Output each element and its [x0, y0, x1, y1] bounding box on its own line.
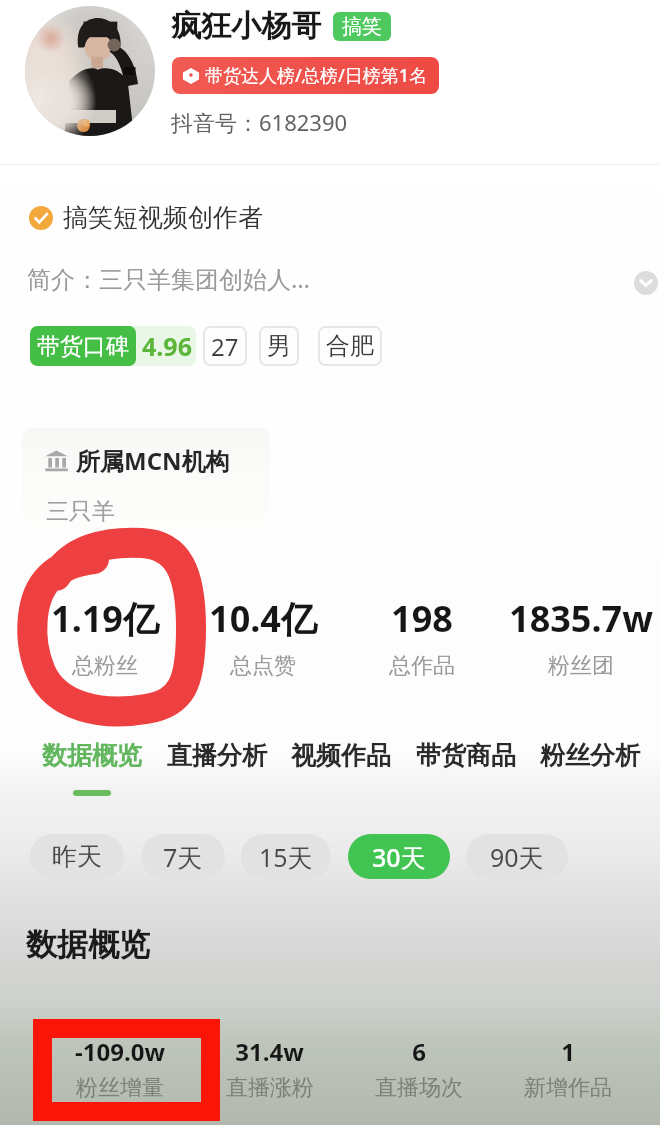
button[interactable]: 视频作品 — [291, 740, 391, 796]
staticText: 198 — [391, 594, 453, 643]
button[interactable]: 15天 — [259, 834, 313, 879]
staticText: 10.4亿 — [209, 594, 317, 643]
staticText: 简介：三只羊集团创始人… — [27, 262, 310, 295]
staticText: 6 — [412, 1035, 426, 1068]
button[interactable]: 所属MCN机构 — [22, 428, 270, 530]
staticText: 粉丝团 — [548, 652, 614, 680]
button[interactable]: 1 — [493, 1035, 642, 1102]
staticText: 抖音号：6182390 — [171, 107, 348, 137]
staticText: 合肥 — [326, 331, 374, 361]
staticText: 粉丝分析 — [540, 740, 640, 771]
staticText: 三只羊 — [46, 497, 115, 526]
staticText: 数据概览 — [42, 740, 142, 771]
button[interactable]: 粉丝分析 — [540, 740, 640, 796]
staticText: 所属MCN机构 — [76, 444, 230, 477]
staticText: 总粉丝 — [72, 652, 138, 680]
staticText: 直播场次 — [375, 1074, 463, 1102]
staticText: 数据概览 — [26, 925, 150, 964]
staticText: 27 — [211, 330, 239, 363]
button[interactable]: 1835.7w — [501, 594, 660, 680]
button[interactable]: Expand bio — [634, 271, 658, 295]
staticText: 31.4w — [235, 1035, 304, 1068]
staticText: 直播分析 — [167, 740, 267, 771]
staticText: 7天 — [163, 840, 203, 874]
staticText: 疯狂小杨哥 — [171, 7, 321, 45]
staticText: 1.19亿 — [51, 594, 159, 643]
staticText: 带货商品 — [416, 740, 516, 771]
staticText: 直播涨粉 — [226, 1074, 314, 1102]
staticText: 15天 — [259, 840, 313, 874]
button[interactable]: 合肥 — [326, 326, 374, 366]
staticText: 男 — [267, 331, 291, 361]
button[interactable]: 带货达人榜/总榜/日榜第1名 — [183, 57, 428, 94]
button[interactable]: 男 — [267, 326, 291, 366]
button[interactable]: 数据概览 — [42, 740, 142, 796]
staticText: 1835.7w — [509, 594, 653, 643]
staticText: 总作品 — [389, 652, 455, 680]
button[interactable]: 带货商品 — [416, 740, 516, 796]
staticText: 带货达人榜/总榜/日榜第1名 — [205, 63, 428, 88]
staticText: 搞笑短视频创作者 — [63, 202, 263, 233]
staticText: 带货口碑 — [37, 332, 129, 361]
button[interactable]: 1.19亿 — [26, 594, 184, 680]
staticText: 90天 — [490, 840, 544, 874]
button[interactable]: 27 — [211, 326, 239, 366]
button[interactable]: 搞笑短视频创作者 — [29, 202, 263, 233]
button[interactable]: 31.4w — [195, 1035, 344, 1102]
button[interactable]: 90天 — [490, 834, 544, 879]
staticText: 1 — [561, 1035, 575, 1068]
staticText: 视频作品 — [291, 740, 391, 771]
staticText: 粉丝增量 — [76, 1074, 164, 1102]
button[interactable]: -109.0w — [45, 1035, 195, 1102]
button[interactable]: 直播分析 — [167, 740, 267, 796]
button[interactable]: 198 — [342, 594, 501, 680]
button[interactable]: 30天 — [372, 834, 426, 879]
staticText: 总点赞 — [230, 652, 296, 680]
staticText: 新增作品 — [524, 1074, 612, 1102]
button[interactable]: 6 — [344, 1035, 493, 1102]
staticText: 30天 — [372, 840, 426, 874]
button[interactable]: 7天 — [163, 834, 203, 879]
staticText: 昨天 — [52, 841, 102, 872]
staticText: 搞笑 — [342, 14, 382, 39]
staticText: 4.96 — [142, 329, 192, 363]
button[interactable]: 10.4亿 — [184, 594, 342, 680]
button[interactable]: 昨天 — [52, 834, 102, 879]
staticText: -109.0w — [75, 1035, 165, 1068]
button[interactable]: 搞笑 — [342, 12, 382, 41]
button[interactable]: 带货口碑 — [30, 326, 196, 366]
